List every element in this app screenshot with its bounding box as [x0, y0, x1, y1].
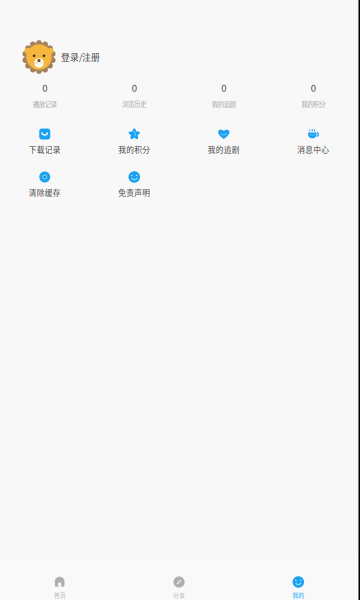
- button[interactable]: 0: [268, 82, 358, 108]
- staticText: 0: [221, 80, 226, 94]
- button[interactable]: 首页: [0, 576, 119, 599]
- staticText: 0: [132, 80, 137, 94]
- button[interactable]: 分享: [119, 576, 239, 599]
- staticText: 下载记录: [29, 144, 61, 155]
- button[interactable]: 消息中心: [268, 127, 358, 155]
- staticText: 消息中心: [297, 144, 329, 155]
- staticText: 首页: [54, 591, 66, 599]
- button[interactable]: 清除缓存: [0, 170, 89, 198]
- button[interactable]: 我的: [239, 576, 358, 599]
- button[interactable]: 免责声明: [89, 170, 179, 198]
- staticText: 登录/注册: [61, 51, 100, 63]
- staticText: 我的追剧: [208, 144, 240, 155]
- button[interactable]: 登录/注册: [0, 40, 358, 74]
- button[interactable]: 0: [89, 82, 179, 108]
- staticText: 我的追剧: [212, 99, 236, 109]
- staticText: 浏览历史: [122, 99, 146, 109]
- staticText: 我的积分: [301, 99, 325, 109]
- staticText: 清除缓存: [29, 187, 61, 198]
- button[interactable]: 我的追剧: [179, 127, 268, 155]
- staticText: 0: [42, 80, 47, 94]
- staticText: 免责声明: [118, 187, 150, 198]
- staticText: 0: [311, 80, 316, 94]
- staticText: 我的积分: [118, 144, 150, 155]
- button[interactable]: 下载记录: [0, 127, 89, 155]
- staticText: 我的: [292, 591, 304, 599]
- button[interactable]: 0: [0, 82, 89, 108]
- button[interactable]: 0: [179, 82, 268, 108]
- staticText: 分享: [173, 591, 185, 599]
- staticText: 播放记录: [33, 99, 57, 109]
- button[interactable]: 我的积分: [89, 127, 179, 155]
